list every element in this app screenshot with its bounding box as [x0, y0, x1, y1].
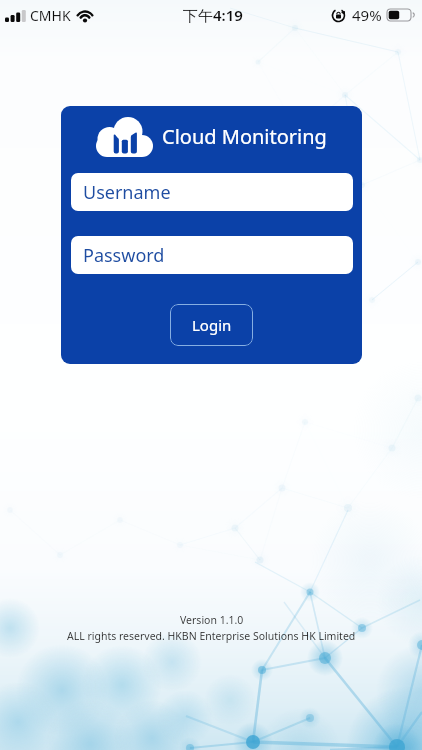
- staticText: Cloud Monitoring: [162, 123, 327, 150]
- staticText: Login: [192, 315, 232, 335]
- staticText: CMHK: [30, 6, 71, 25]
- button[interactable]: Username: [71, 173, 353, 211]
- staticText: Username: [83, 180, 171, 205]
- staticText: Version 1.1.0: [180, 613, 244, 627]
- button[interactable]: Password: [71, 236, 353, 274]
- staticText: 下午4:19: [183, 5, 243, 25]
- staticText: 49%: [352, 5, 382, 25]
- staticText: ALL rights reserved. HKBN Enterprise Sol…: [67, 629, 356, 643]
- staticText: Password: [83, 243, 165, 268]
- button[interactable]: Login: [170, 304, 253, 346]
